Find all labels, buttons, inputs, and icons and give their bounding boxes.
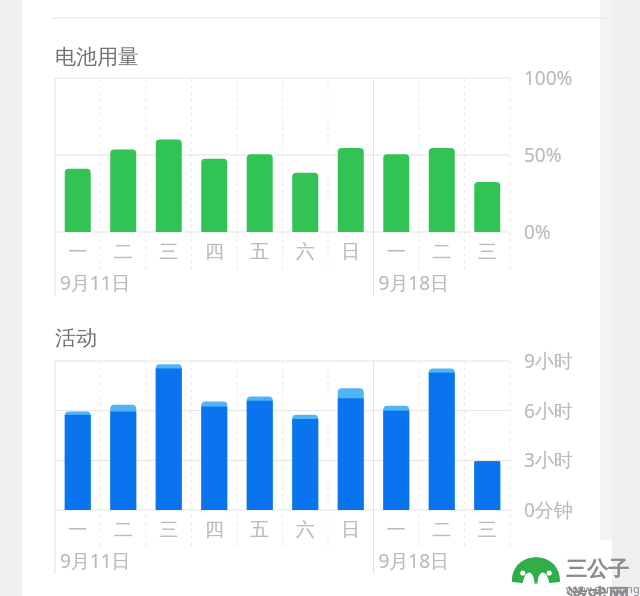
- button[interactable]: Battery and activity charts: [0, 0, 640, 596]
